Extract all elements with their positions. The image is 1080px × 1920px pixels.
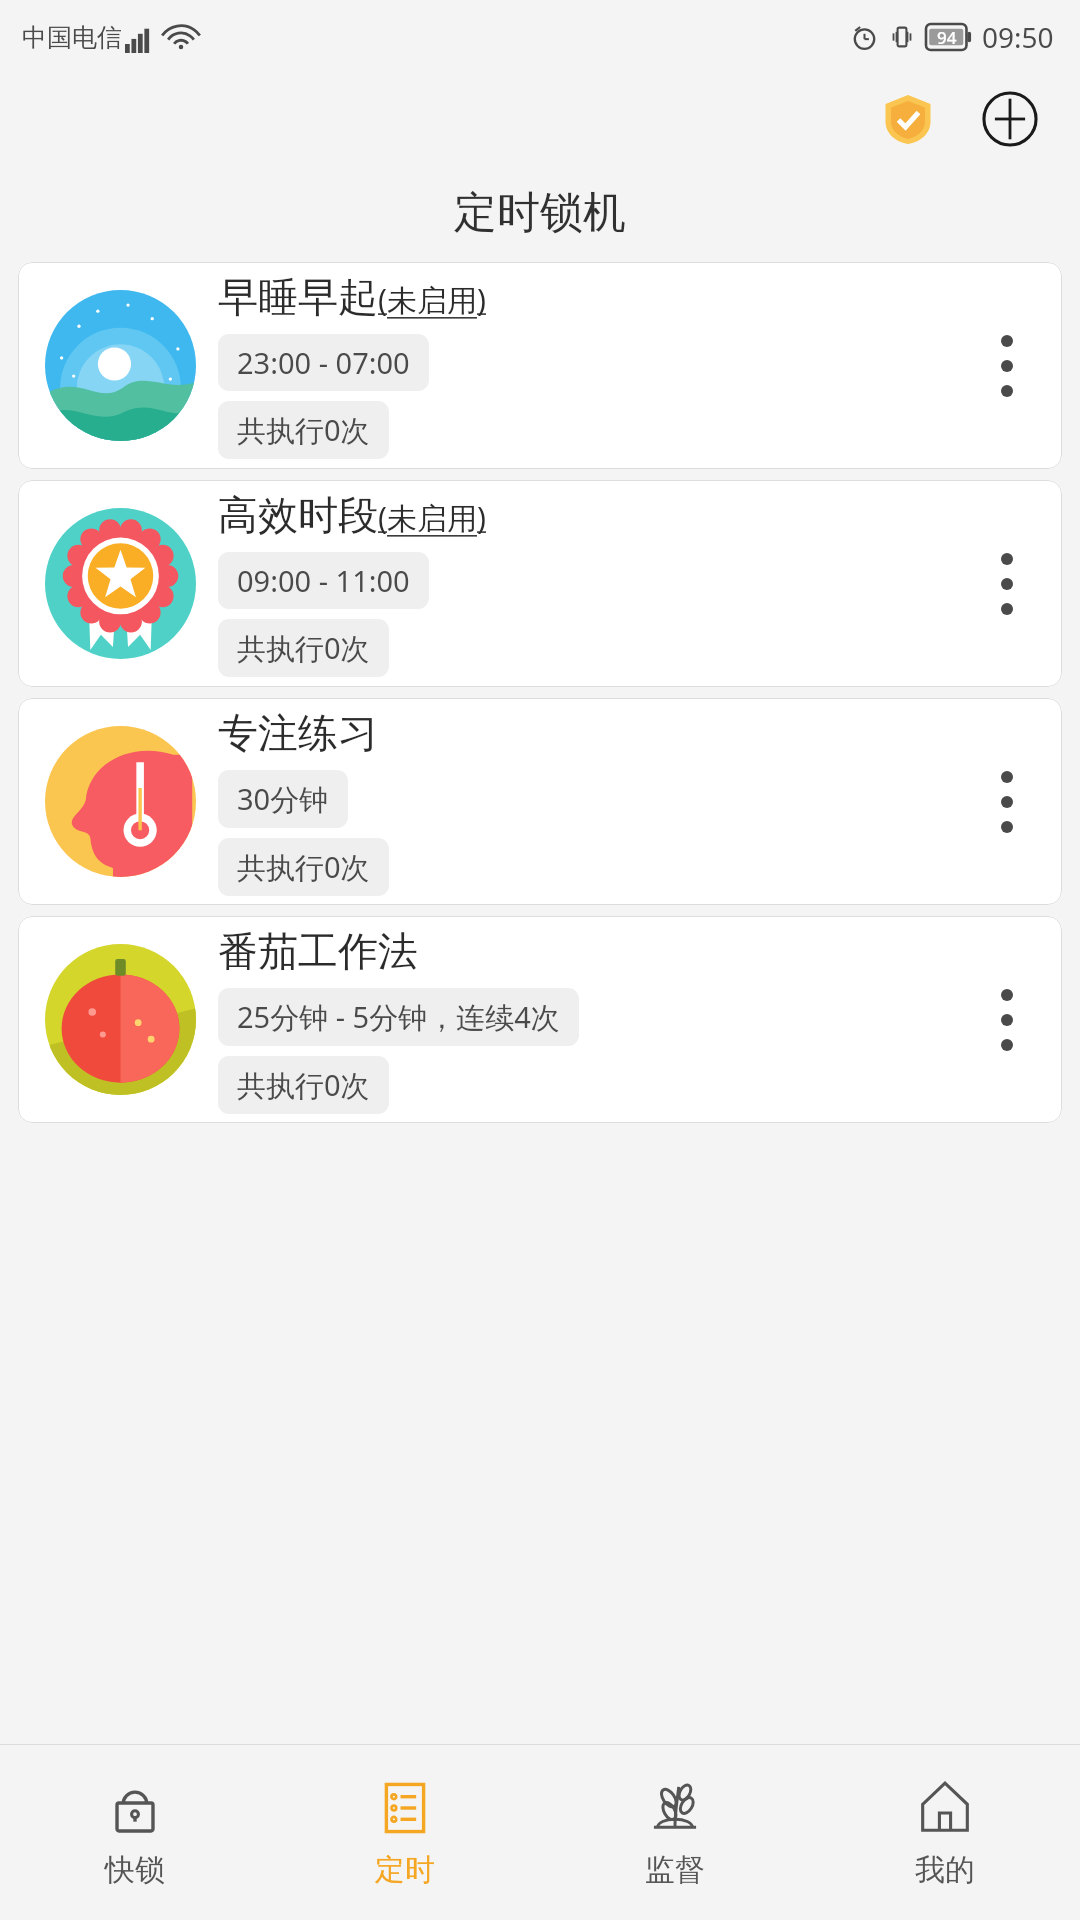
staticText: 番茄工作法 [218,926,418,976]
button[interactable]: More options [952,698,1062,905]
button[interactable]: 监督 [540,1745,810,1920]
staticText: 共执行0次 [237,628,370,668]
staticText: 定时 [375,1851,435,1889]
button[interactable]: More options [952,480,1062,687]
staticText: 快锁 [105,1851,165,1889]
button[interactable]: 我的 [810,1745,1080,1920]
staticText: 专注练习 [218,708,378,758]
button[interactable]: 快锁 [0,1745,270,1920]
button[interactable]: Protection status [870,81,946,157]
staticText: 共执行0次 [237,1065,370,1105]
button[interactable]: More options [952,916,1062,1123]
button[interactable]: 专注练习 [18,698,1062,905]
staticText: 早睡早起 [218,272,378,322]
button[interactable]: Add schedule [972,81,1048,157]
button[interactable]: 定时 [270,1745,540,1920]
staticText: (未启用) [378,497,486,538]
staticText: 23:00 - 07:00 [237,343,410,382]
button[interactable]: 高效时段 [18,480,1062,687]
staticText: 09:50 [982,18,1054,56]
staticText: 定时锁机 [454,186,626,240]
staticText: 09:00 - 11:00 [237,561,410,600]
staticText: (未启用) [378,279,486,320]
button[interactable]: 早睡早起 [18,262,1062,469]
staticText: 我的 [915,1851,975,1889]
button[interactable]: 番茄工作法 [18,916,1062,1123]
staticText: 中国电信 [22,22,122,53]
staticText: 共执行0次 [237,410,370,450]
staticText: 共执行0次 [237,847,370,887]
staticText: 监督 [645,1851,705,1889]
staticText: 30分钟 [237,779,329,819]
staticText: 高效时段 [218,490,378,540]
button[interactable]: More options [952,262,1062,469]
staticText: 25分钟 - 5分钟，连续4次 [237,997,560,1037]
staticText: 94 [937,26,957,49]
